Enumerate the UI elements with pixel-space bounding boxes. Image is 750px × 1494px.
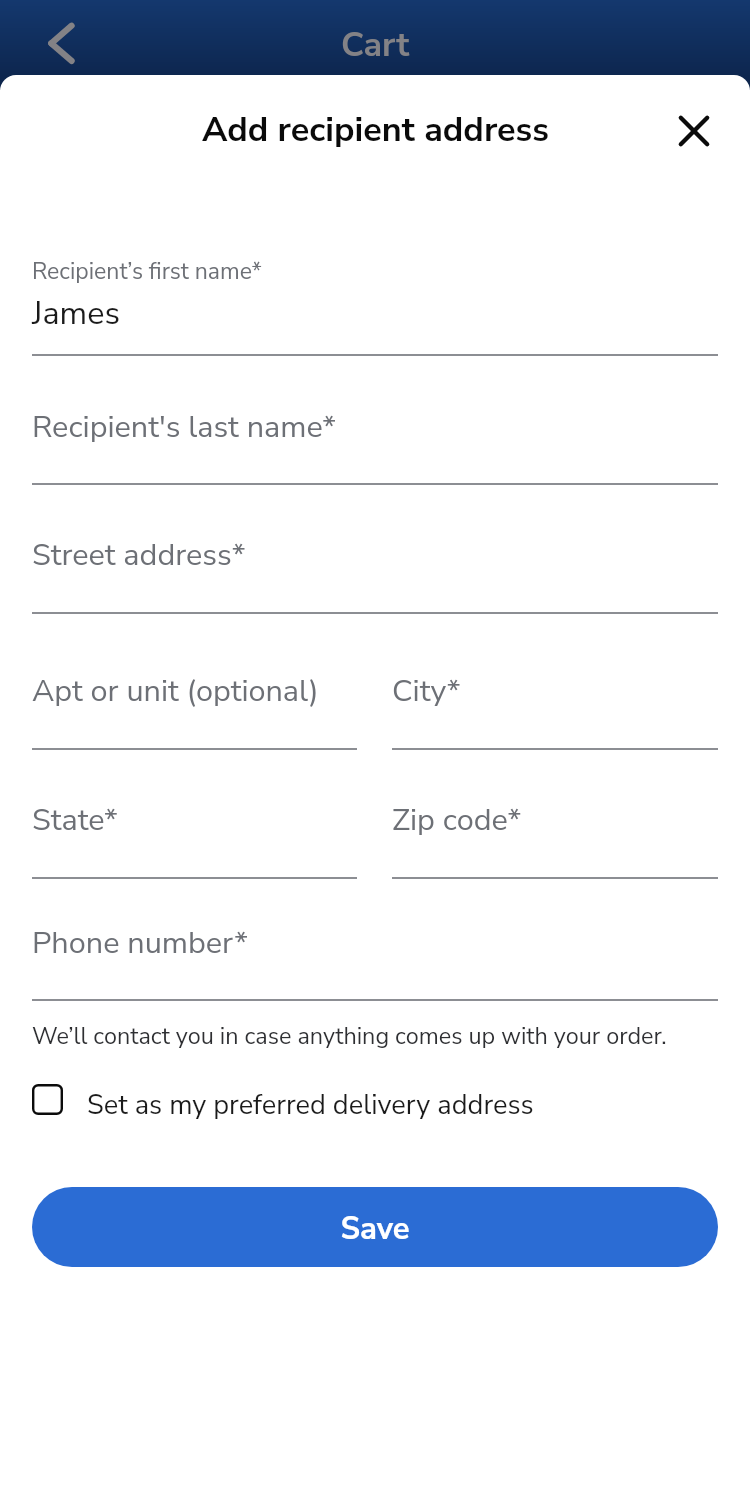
staticText: Recipient's last name* — [32, 406, 337, 448]
staticText: We’ll contact you in case anything comes… — [32, 1020, 667, 1052]
button[interactable]: Zip code* — [392, 790, 718, 883]
button[interactable]: City* — [392, 662, 718, 755]
button[interactable]: Recipient's last name* — [32, 397, 718, 490]
button[interactable]: Apt or unit (optional) — [32, 662, 357, 755]
button[interactable]: Phone number* — [32, 913, 718, 1006]
button[interactable]: State* — [32, 790, 357, 883]
button[interactable]: Street address* — [32, 526, 718, 619]
staticText: Set as my preferred delivery address — [87, 1087, 534, 1124]
staticText: Apt or unit (optional) — [32, 670, 319, 712]
staticText: Recipient’s first name* — [32, 256, 262, 287]
staticText: Save — [340, 1208, 410, 1250]
staticText: City* — [392, 670, 461, 712]
staticText: Phone number* — [32, 922, 248, 964]
staticText: James — [32, 291, 120, 335]
staticText: Zip code* — [392, 799, 522, 841]
button[interactable]: Set as my preferred delivery address — [32, 1078, 534, 1122]
button[interactable]: Save — [32, 1187, 718, 1267]
button[interactable]: Recipient's first name — [32, 250, 718, 360]
staticText: State* — [32, 799, 118, 841]
button[interactable]: Close — [658, 95, 730, 167]
staticText: Add recipient address — [202, 106, 549, 153]
staticText: Cart — [341, 22, 410, 68]
button[interactable]: Back — [18, 8, 90, 80]
staticText: Street address* — [32, 534, 246, 576]
